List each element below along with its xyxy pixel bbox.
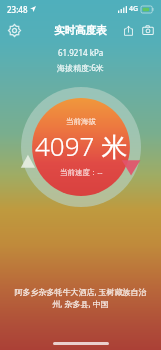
button[interactable]: Settings bbox=[4, 20, 24, 40]
staticText: 4097 米 bbox=[35, 128, 128, 164]
staticText: 当前速度：-- bbox=[60, 167, 103, 177]
staticText: 海拔精度:6米 bbox=[57, 62, 104, 73]
staticText: 阿多乡杂多牦牛大酒店, 玉树藏族自治州, 杂多县, 中国 bbox=[14, 286, 147, 310]
button[interactable]: Camera bbox=[138, 20, 158, 40]
staticText: 4G bbox=[129, 4, 139, 14]
staticText: 23:48 bbox=[7, 4, 28, 15]
staticText: 当前海拔 bbox=[66, 117, 96, 126]
staticText: 实时高度表 bbox=[54, 24, 107, 37]
staticText: 61.9214 kPa bbox=[58, 47, 104, 58]
button[interactable]: Share bbox=[118, 20, 138, 40]
button[interactable]: 当前海拔 bbox=[21, 87, 141, 207]
